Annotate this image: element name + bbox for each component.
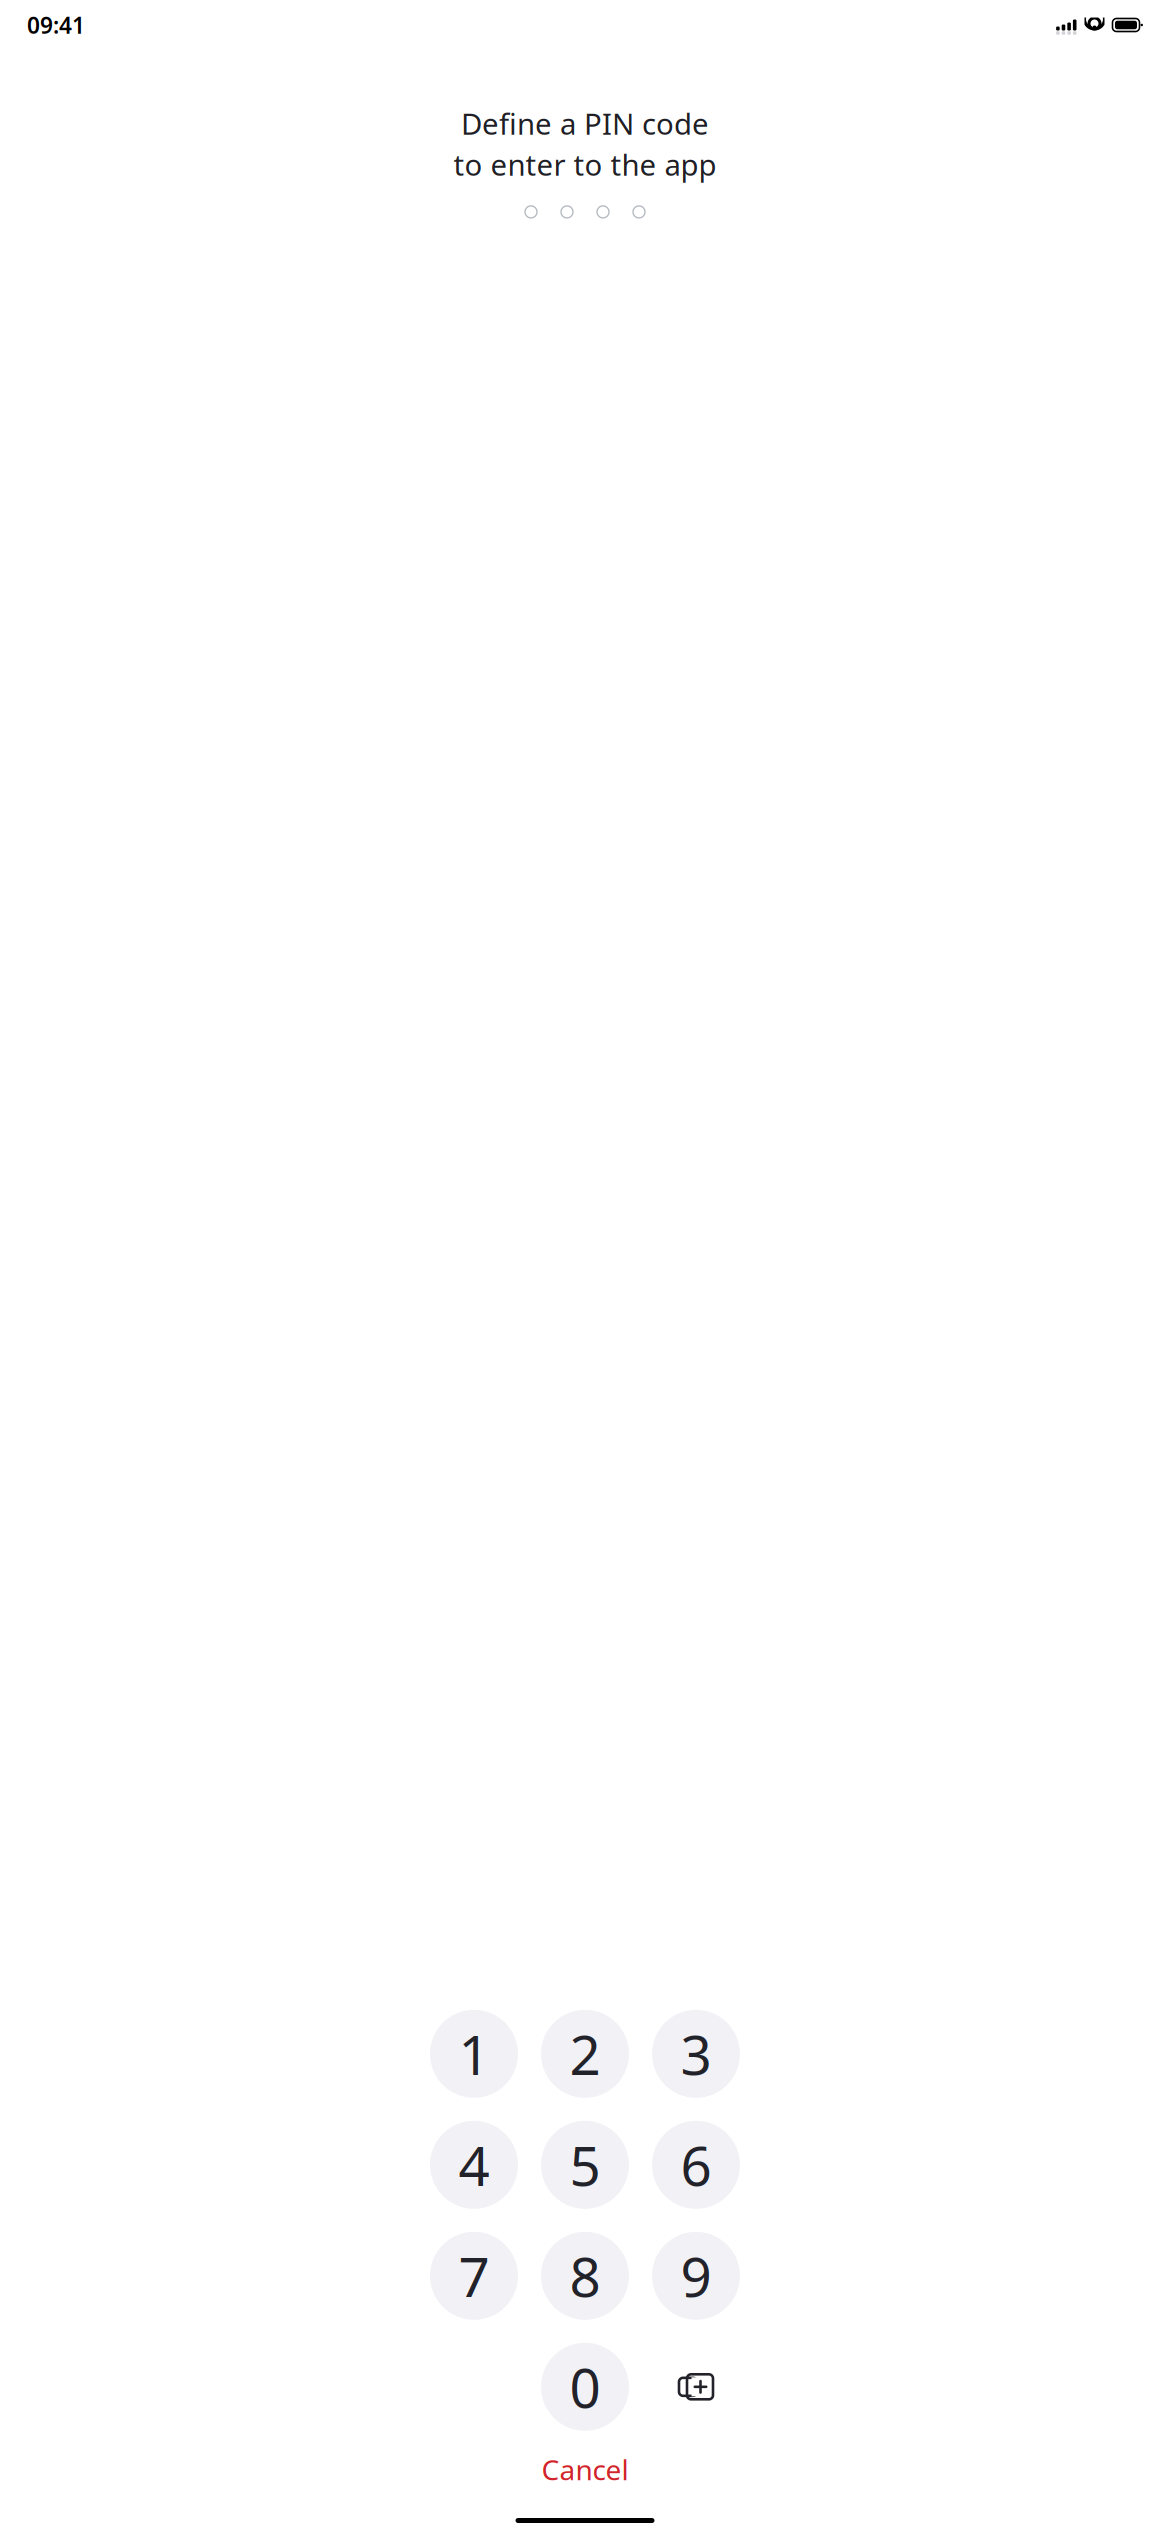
staticText: 1 — [458, 2017, 489, 2090]
button[interactable]: Delete — [652, 2343, 740, 2431]
staticText: 4 — [458, 2128, 489, 2201]
button[interactable]: 5 — [541, 2121, 629, 2209]
button[interactable]: Cancel — [521, 2443, 648, 2496]
staticText: 8 — [569, 2239, 600, 2312]
button[interactable]: 0 — [541, 2343, 629, 2431]
button[interactable]: 2 — [541, 2010, 629, 2098]
staticText: Cancel — [541, 2451, 628, 2488]
staticText: 7 — [458, 2239, 489, 2312]
staticText: 3 — [680, 2017, 711, 2090]
staticText: 0 — [569, 2350, 600, 2423]
button[interactable]: 6 — [652, 2121, 740, 2209]
staticText: Define a PIN code — [461, 104, 709, 143]
staticText: 6 — [680, 2128, 711, 2201]
button[interactable]: 7 — [430, 2232, 518, 2320]
staticText: 5 — [569, 2128, 600, 2201]
staticText: to enter to the app — [453, 145, 716, 184]
staticText: 9 — [680, 2239, 711, 2312]
button[interactable]: 9 — [652, 2232, 740, 2320]
button[interactable]: 3 — [652, 2010, 740, 2098]
button[interactable]: 4 — [430, 2121, 518, 2209]
button[interactable]: 8 — [541, 2232, 629, 2320]
button[interactable]: 1 — [430, 2010, 518, 2098]
staticText: 2 — [569, 2017, 600, 2090]
staticText: 09:41 — [27, 10, 85, 40]
